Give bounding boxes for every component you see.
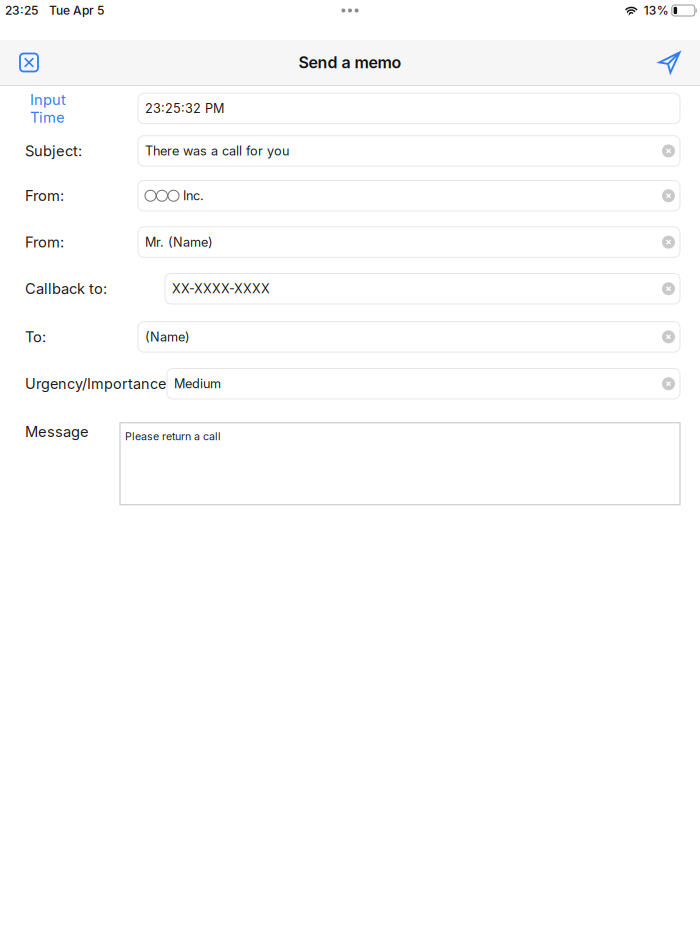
staticText: XX-XXXX-XXXX bbox=[172, 281, 270, 296]
staticText: Please return a call bbox=[125, 430, 221, 443]
staticText: There was a call for you bbox=[145, 143, 289, 159]
staticText: 23:25:32 PM bbox=[145, 101, 224, 116]
button[interactable]: Please return a call bbox=[120, 423, 680, 505]
staticText: 23:25 bbox=[5, 3, 38, 18]
staticText: Tue Apr 5 bbox=[49, 3, 104, 18]
staticText: Input Time bbox=[30, 91, 66, 126]
button[interactable]: Inc. bbox=[138, 180, 680, 211]
staticText: Medium bbox=[174, 376, 221, 391]
staticText: Mr. (Name) bbox=[145, 234, 213, 250]
button[interactable]: Send bbox=[658, 51, 681, 74]
staticText: From: bbox=[25, 233, 64, 251]
button[interactable]: There was a call for you bbox=[138, 136, 680, 166]
button[interactable]: Mr. (Name) bbox=[138, 227, 680, 257]
button[interactable]: 23:25:32 PM bbox=[138, 93, 680, 124]
staticText: Send a memo bbox=[298, 53, 401, 72]
button[interactable]: (Name) bbox=[138, 322, 680, 352]
button[interactable]: Medium bbox=[167, 368, 680, 399]
button[interactable]: XX-XXXX-XXXX bbox=[165, 273, 680, 304]
staticText: Urgency/Importance bbox=[25, 375, 166, 392]
staticText: Inc. bbox=[183, 188, 204, 203]
staticText: Message bbox=[25, 423, 89, 440]
staticText: From: bbox=[25, 187, 64, 205]
staticText: 13% bbox=[644, 3, 669, 18]
button[interactable]: Close bbox=[18, 51, 40, 73]
staticText: Subject: bbox=[25, 142, 82, 160]
staticText: Callback to: bbox=[25, 280, 107, 298]
staticText: To: bbox=[25, 328, 46, 346]
staticText: (Name) bbox=[145, 329, 190, 344]
